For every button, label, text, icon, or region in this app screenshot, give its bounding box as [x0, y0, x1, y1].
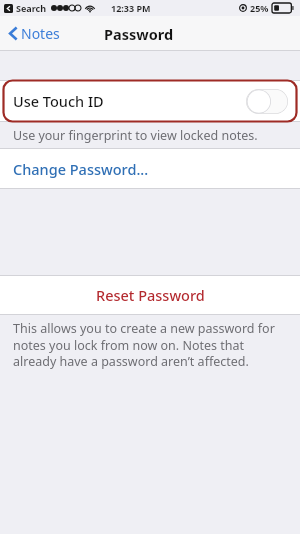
- button[interactable]: Notes: [7, 20, 62, 47]
- staticText: Password: [104, 24, 174, 44]
- staticText: Reset Password: [96, 285, 205, 305]
- button[interactable]: Change Password...: [0, 149, 300, 188]
- button[interactable]: Reset Password: [0, 276, 300, 314]
- staticText: Notes: [21, 24, 60, 43]
- staticText: 25%: [250, 2, 269, 14]
- button[interactable]: Use Touch ID: [0, 81, 300, 121]
- staticText: This allows you to create a new password…: [13, 320, 288, 369]
- staticText: 12:33 PM: [111, 2, 151, 14]
- staticText: Use Touch ID: [13, 91, 104, 111]
- button[interactable]: Use Touch ID toggle, off: [246, 89, 288, 114]
- staticText: Use your fingerprint to view locked note…: [13, 127, 258, 144]
- staticText: Search: [16, 2, 47, 14]
- staticText: Change Password...: [13, 159, 149, 179]
